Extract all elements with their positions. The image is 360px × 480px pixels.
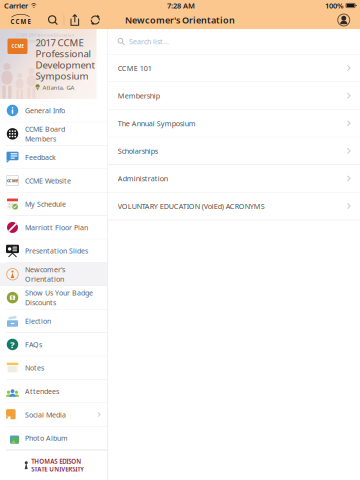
button[interactable]: My Schedule [0, 193, 107, 216]
staticText: CCME Website [25, 176, 71, 185]
button[interactable]: Attendees [0, 380, 107, 403]
staticText: Newcomer's Orientation [25, 265, 65, 284]
button[interactable]: Election [0, 310, 107, 333]
staticText: Election [25, 316, 51, 326]
staticText: Show Us Your Badge Discounts [25, 288, 93, 307]
button[interactable]: Social Media [0, 403, 107, 427]
button[interactable]: $ [0, 286, 107, 310]
button[interactable]: Search [46, 13, 60, 27]
button[interactable]: Newcomer's Orientation [0, 263, 107, 286]
button[interactable]: The Annual Symposium [108, 110, 360, 137]
button[interactable]: ? [0, 333, 107, 356]
staticText: CCME [11, 43, 23, 49]
staticText: Administration [118, 174, 168, 183]
staticText: CCME [7, 178, 18, 183]
staticText: Newcomer's Orientation [125, 14, 235, 26]
button[interactable]: Share [68, 12, 81, 28]
staticText: 7:28 AM [167, 0, 195, 11]
staticText: 100% [325, 0, 344, 11]
staticText: Presentation Slides [25, 246, 88, 256]
staticText: VOLUNTARY EDUCATION (VolEd) ACRONYMS [118, 201, 265, 211]
button[interactable]: General Info [0, 99, 107, 122]
staticText: CCME [10, 17, 30, 26]
button[interactable]: CCME 101 [108, 55, 360, 82]
staticText: ? [10, 338, 15, 351]
button[interactable]: Membership [108, 82, 360, 110]
button[interactable]: Account [335, 12, 352, 28]
staticText: STATE UNIVERSITY [31, 465, 84, 473]
button[interactable]: CCME [0, 169, 107, 193]
button[interactable]: Scholarships [108, 137, 360, 165]
staticText: My Schedule [25, 199, 66, 209]
button[interactable]: Refresh [88, 12, 103, 27]
staticText: 2017 CCME Professional Development Sympo… [35, 36, 94, 82]
button[interactable]: Presentation Slides [0, 239, 107, 263]
staticText: Membership [118, 91, 160, 101]
button[interactable]: CCME home [8, 12, 33, 28]
staticText: CCME Board Members [25, 124, 65, 143]
staticText: CCME 101 [118, 63, 152, 73]
button[interactable]: Notes [0, 356, 107, 380]
staticText: Attendees [25, 386, 59, 396]
button[interactable]: Marriott Floor Plan [0, 216, 107, 239]
button[interactable]: Administration [108, 165, 360, 193]
button[interactable]: CCME Board Members [0, 122, 107, 146]
button[interactable]: Feedback [0, 146, 107, 169]
staticText: Marriott Floor Plan [25, 223, 88, 232]
staticText: THOMAS EDISON [31, 457, 81, 465]
staticText: Carrier [4, 0, 28, 11]
button[interactable]: VOLUNTARY EDUCATION (VolEd) ACRONYMS [108, 193, 360, 220]
staticText: Scholarships [118, 146, 158, 156]
staticText: Photo Album [25, 433, 68, 443]
staticText: Notes [25, 363, 44, 373]
staticText: The Annual Symposium [118, 118, 196, 128]
staticText: Atlanta, GA [42, 83, 74, 91]
staticText: Search list... [129, 37, 169, 46]
staticText: Social Media [25, 410, 66, 419]
staticText: $ [11, 295, 14, 301]
staticText: CCME 2017 Annual Education Symposium [15, 32, 74, 44]
staticText: General Info [25, 106, 65, 115]
staticText: FAQs [25, 340, 42, 349]
staticText: Feedback [25, 152, 56, 162]
button[interactable]: Photo Album [0, 427, 107, 450]
